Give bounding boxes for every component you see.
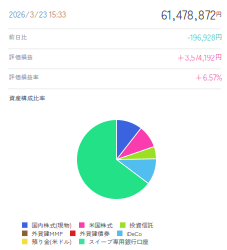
staticText: スイープ専用銀行口座	[88, 237, 148, 246]
staticText: 米国株式	[88, 221, 112, 230]
staticText: 円	[215, 52, 222, 62]
staticText: 円	[215, 32, 222, 42]
staticText: 評価損益率	[9, 73, 39, 81]
staticText: 資産構成比率	[9, 94, 45, 102]
staticText: 前日比	[9, 33, 27, 41]
staticText: 2026/3/23 15:33	[9, 8, 66, 20]
staticText: 投資信託	[129, 221, 153, 230]
staticText: 評価損益	[9, 53, 33, 61]
staticText: iDeCo	[126, 229, 141, 238]
staticText: +6.57	[195, 71, 216, 83]
staticText: +3,574,192	[177, 51, 215, 63]
staticText: 外貨建MMF	[31, 229, 62, 238]
staticText: 外貨建債券	[79, 229, 109, 238]
staticText: 預り金(米ドル)	[31, 237, 71, 246]
staticText: 国内株式(現物)	[31, 221, 71, 230]
staticText: %	[216, 71, 222, 83]
staticText: 61,478,872	[161, 5, 216, 23]
staticText: 円	[216, 10, 222, 18]
staticText: -196,928	[187, 31, 215, 43]
